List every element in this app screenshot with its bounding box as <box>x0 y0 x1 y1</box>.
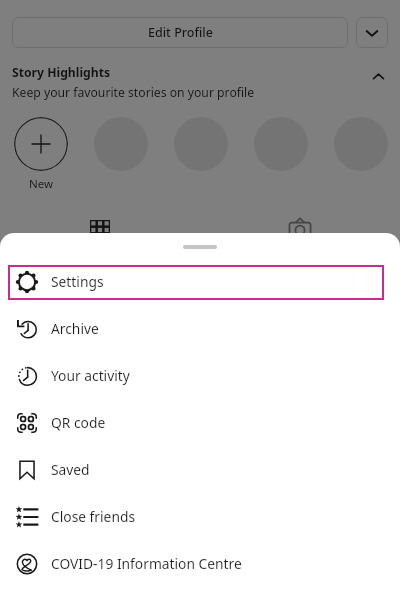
button[interactable]: Settings <box>0 258 400 305</box>
button[interactable]: Highlight <box>254 117 308 171</box>
button[interactable]: COVID-19 Information Centre <box>0 540 400 587</box>
button[interactable]: Highlight <box>174 117 228 171</box>
button[interactable]: Saved <box>0 446 400 493</box>
staticText: Story Highlights <box>12 64 111 81</box>
button[interactable]: Highlight <box>94 117 148 171</box>
button[interactable]: Highlight <box>334 117 388 171</box>
staticText: Archive <box>51 319 99 338</box>
button[interactable]: Collapse <box>368 66 388 86</box>
staticText: New <box>29 176 54 192</box>
staticText: Settings <box>51 272 104 291</box>
button[interactable]: Close friends <box>0 493 400 540</box>
button[interactable]: Edit Profile <box>12 17 348 48</box>
staticText: COVID-19 Information Centre <box>51 554 242 573</box>
staticText: Keep your favourite stories on your prof… <box>12 84 255 101</box>
button[interactable]: Show suggested accounts <box>356 17 388 48</box>
staticText: Close friends <box>51 507 136 526</box>
button[interactable]: Your activity <box>0 352 400 399</box>
staticText: QR code <box>51 413 106 432</box>
staticText: Edit Profile <box>148 24 213 41</box>
button[interactable]: New highlight <box>14 117 68 171</box>
staticText: Your activity <box>51 366 130 385</box>
button[interactable]: QR code <box>0 399 400 446</box>
button[interactable]: Grid view <box>0 200 200 248</box>
button[interactable]: Tagged photos <box>200 200 400 248</box>
button[interactable]: Archive <box>0 305 400 352</box>
staticText: Saved <box>51 460 90 479</box>
